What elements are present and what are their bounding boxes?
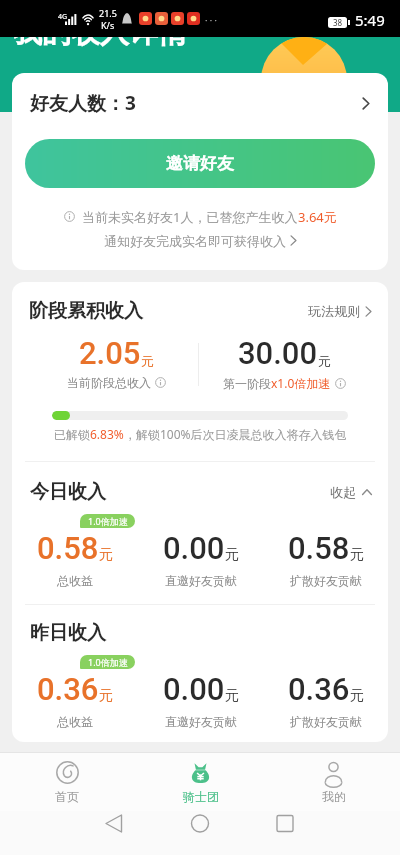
- staticText: 当前未实名好友1人，已替您产生收入: [82, 208, 298, 225]
- staticText: 38: [333, 17, 343, 28]
- staticText: 元: [318, 353, 331, 369]
- staticText: 2.05: [79, 335, 141, 371]
- staticText: 3.64元: [298, 208, 337, 225]
- button[interactable]: 邀请好友: [25, 139, 375, 188]
- staticText: 元: [99, 546, 113, 564]
- staticText: 4G: [58, 12, 68, 22]
- staticText: 阶段累积收入: [29, 299, 143, 323]
- staticText: 扩散好友贡献: [290, 714, 362, 729]
- staticText: K/s: [101, 19, 115, 31]
- staticText: 直邀好友贡献: [165, 573, 237, 588]
- staticText: 好友人数：3: [30, 90, 136, 116]
- staticText: 元: [141, 353, 154, 369]
- staticText: 0.36: [288, 671, 350, 707]
- button[interactable]: Knights: [134, 753, 267, 811]
- staticText: 元: [350, 687, 364, 705]
- staticText: 今日收入: [30, 480, 106, 504]
- staticText: 骑士团: [183, 789, 219, 804]
- staticText: 元: [225, 687, 239, 705]
- button[interactable]: Profile: [267, 753, 400, 811]
- staticText: · · ·: [205, 14, 217, 26]
- staticText: 昨日收入: [30, 621, 106, 645]
- staticText: 我的: [322, 789, 346, 804]
- staticText: 0.58: [37, 530, 99, 566]
- staticText: 首页: [55, 789, 79, 804]
- staticText: 1.0倍加速: [88, 656, 128, 668]
- staticText: 0.36: [37, 671, 99, 707]
- staticText: 总收益: [57, 714, 93, 729]
- button[interactable]: 通知好友完成实名即可获得收入: [12, 232, 388, 249]
- staticText: 已解锁: [54, 427, 90, 442]
- button[interactable]: Home: [0, 753, 134, 811]
- staticText: 30.00: [238, 335, 318, 371]
- staticText: 元: [350, 546, 364, 564]
- button[interactable]: 玩法规则: [308, 303, 372, 319]
- staticText: 5:49: [355, 10, 385, 30]
- staticText: 直邀好友贡献: [165, 714, 237, 729]
- staticText: 当前阶段总收入: [67, 375, 151, 390]
- staticText: 0.00: [163, 530, 225, 566]
- staticText: 第一阶段: [223, 376, 271, 391]
- staticText: 玩法规则: [308, 303, 360, 319]
- staticText: 收起: [330, 484, 356, 500]
- staticText: ，解锁100%后次日凌晨总收入将存入钱包: [124, 426, 347, 442]
- staticText: 总收益: [57, 573, 93, 588]
- staticText: 0.58: [288, 530, 350, 566]
- button[interactable]: 好友人数：3: [12, 73, 388, 133]
- staticText: 0.00: [163, 671, 225, 707]
- staticText: 我的收入详情: [13, 14, 187, 51]
- staticText: 6.83%: [90, 426, 124, 442]
- staticText: x1.0倍加速: [271, 375, 331, 391]
- staticText: 元: [99, 687, 113, 705]
- staticText: 1.0倍加速: [88, 515, 128, 527]
- staticText: 21.5: [99, 7, 117, 19]
- staticText: 扩散好友贡献: [290, 573, 362, 588]
- button[interactable]: 收起: [330, 484, 372, 500]
- staticText: 元: [225, 546, 239, 564]
- staticText: 邀请好友: [166, 153, 234, 174]
- staticText: 通知好友完成实名即可获得收入: [104, 233, 286, 249]
